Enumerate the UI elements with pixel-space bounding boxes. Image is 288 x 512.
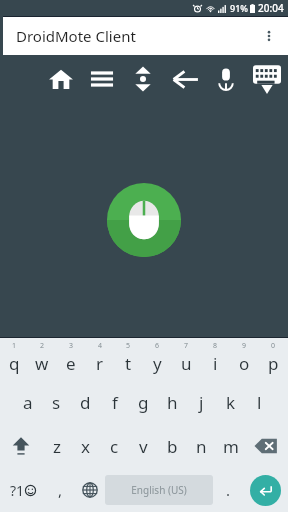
button[interactable]: 7	[172, 338, 201, 381]
button[interactable]: Home	[44, 62, 78, 96]
button[interactable]: Voice input	[209, 62, 243, 96]
button[interactable]: c	[100, 424, 129, 468]
staticText: 91%	[230, 2, 248, 14]
staticText: a	[23, 391, 33, 414]
staticText: 0	[271, 341, 276, 351]
button[interactable]: l	[245, 381, 274, 424]
button[interactable]: f	[100, 381, 129, 424]
button[interactable]: Menu	[85, 62, 119, 96]
staticText: w	[35, 352, 49, 375]
staticText: s	[52, 391, 61, 414]
staticText: p	[268, 352, 279, 375]
button[interactable]: j	[187, 381, 216, 424]
staticText: i	[213, 352, 218, 375]
staticText: d	[80, 391, 91, 414]
staticText: k	[226, 391, 236, 414]
button[interactable]: b	[158, 424, 187, 468]
button[interactable]: 5	[114, 338, 143, 381]
staticText: q	[9, 352, 20, 375]
staticText: 4	[98, 341, 103, 351]
button[interactable]: Shift	[0, 424, 42, 468]
staticText: m	[223, 435, 239, 458]
button[interactable]: Mouse	[107, 183, 181, 257]
staticText: u	[181, 352, 192, 375]
staticText: 5	[126, 341, 131, 351]
staticText: ,	[58, 480, 63, 500]
staticText: 9	[242, 341, 247, 351]
staticText: 6	[155, 341, 160, 351]
button[interactable]: Back	[168, 62, 202, 96]
staticText: 20:04	[258, 1, 284, 15]
staticText: 1	[12, 341, 17, 351]
staticText: b	[167, 435, 178, 458]
button[interactable]: 3	[56, 338, 85, 381]
button[interactable]: k	[216, 381, 245, 424]
button[interactable]: h	[158, 381, 187, 424]
button[interactable]: 1	[0, 338, 28, 381]
staticText: j	[199, 391, 204, 414]
button[interactable]: Show keyboard	[250, 62, 284, 96]
staticText: f	[112, 391, 118, 414]
button[interactable]: x	[71, 424, 100, 468]
staticText: .	[226, 480, 231, 500]
staticText: y	[153, 352, 162, 375]
button[interactable]: Change language	[75, 468, 105, 512]
staticText: 2	[40, 341, 45, 351]
staticText: 8	[213, 341, 218, 351]
button[interactable]: Backspace	[245, 424, 288, 468]
button[interactable]: n	[187, 424, 216, 468]
staticText: h	[167, 391, 178, 414]
staticText: 3	[69, 341, 74, 351]
button[interactable]: ,	[45, 468, 75, 512]
staticText: o	[239, 352, 250, 375]
staticText: n	[196, 435, 207, 458]
button[interactable]: More options	[250, 17, 288, 55]
staticText: e	[66, 352, 76, 375]
button[interactable]: .	[213, 468, 243, 512]
staticText: c	[110, 435, 119, 458]
button[interactable]: English (US)	[105, 475, 213, 505]
staticText: z	[53, 435, 61, 458]
staticText: l	[257, 391, 262, 414]
button[interactable]: Enter	[250, 475, 281, 506]
staticText: 7	[184, 341, 189, 351]
staticText: English (US)	[131, 483, 187, 497]
button[interactable]: 9	[230, 338, 259, 381]
button[interactable]: Symbols and emoji	[0, 468, 45, 512]
button[interactable]: 4	[85, 338, 114, 381]
staticText: r	[96, 352, 104, 375]
button[interactable]: a	[13, 381, 42, 424]
button[interactable]: g	[129, 381, 158, 424]
staticText: t	[125, 352, 132, 375]
staticText: x	[81, 435, 90, 458]
staticText: v	[139, 435, 148, 458]
staticText: DroidMote Client	[16, 26, 250, 46]
staticText: ?1	[10, 481, 25, 500]
button[interactable]: v	[129, 424, 158, 468]
button[interactable]: d	[71, 381, 100, 424]
button[interactable]: 2	[28, 338, 56, 381]
button[interactable]: m	[216, 424, 245, 468]
button[interactable]: s	[42, 381, 71, 424]
button[interactable]: 8	[201, 338, 230, 381]
staticText: g	[138, 391, 149, 414]
button[interactable]: z	[42, 424, 71, 468]
button[interactable]: 0	[259, 338, 288, 381]
button[interactable]: Scroll	[126, 62, 160, 96]
button[interactable]: 6	[143, 338, 172, 381]
